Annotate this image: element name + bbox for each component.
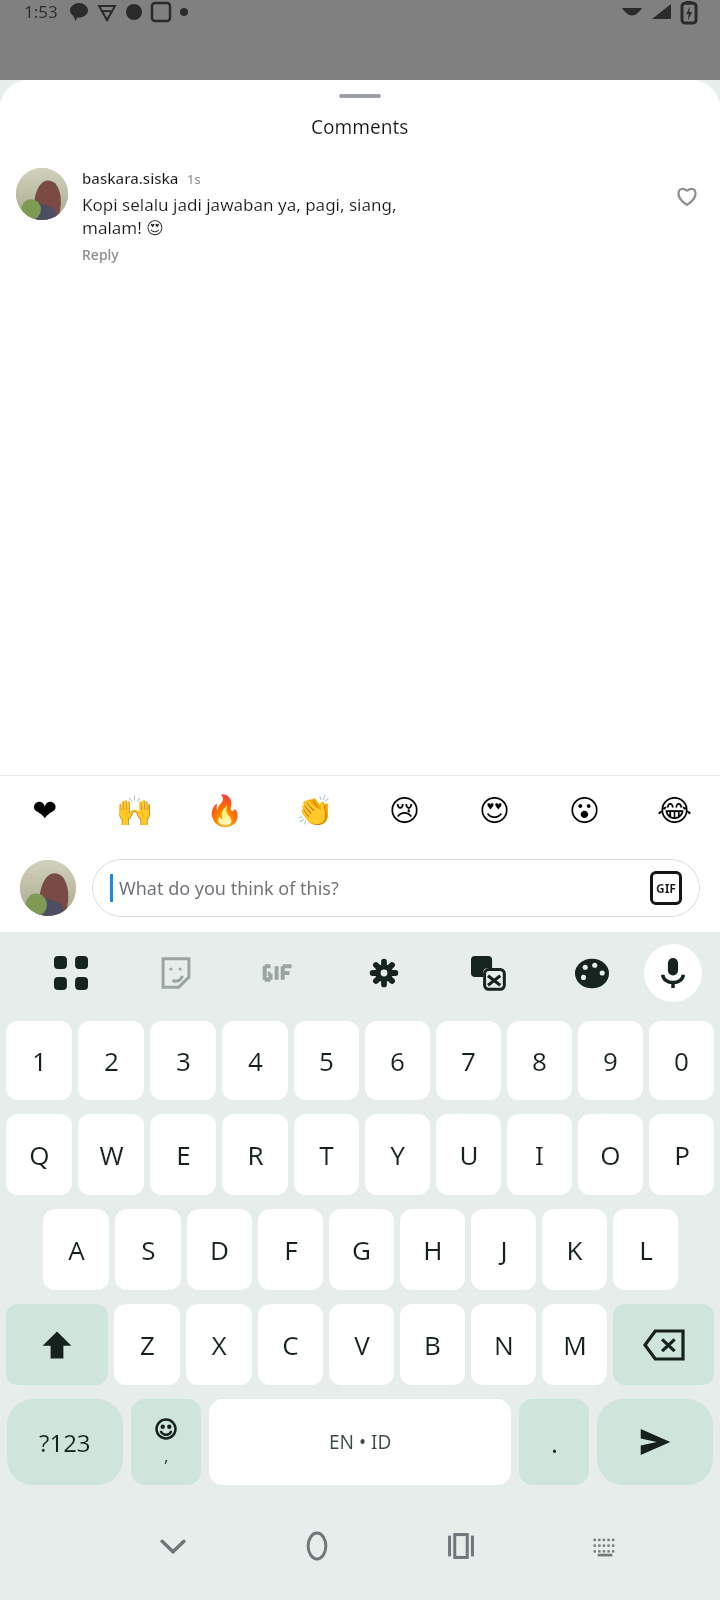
button[interactable]: Switch keyboard <box>533 1492 677 1600</box>
staticText: 🔥 <box>206 793 244 828</box>
button[interactable]: M <box>542 1304 607 1385</box>
button[interactable]: U <box>436 1114 501 1195</box>
staticText: Comments <box>311 114 409 140</box>
button[interactable]: 😍 <box>450 776 540 844</box>
button[interactable]: O <box>578 1114 643 1195</box>
staticText: 😍 <box>479 793 511 828</box>
staticText: J <box>500 1232 508 1267</box>
staticText: R <box>247 1137 264 1172</box>
button[interactable]: GIF <box>650 871 682 905</box>
staticText: O <box>600 1137 621 1172</box>
button[interactable]: ?123 <box>7 1399 123 1485</box>
staticText: M <box>563 1327 587 1362</box>
staticText: B <box>424 1327 441 1362</box>
button[interactable]: Send <box>597 1399 713 1485</box>
staticText: K <box>566 1232 583 1267</box>
button[interactable]: baskara.siska <box>0 164 720 264</box>
button[interactable]: T <box>294 1114 359 1195</box>
button[interactable]: 😂 <box>630 776 720 844</box>
staticText: 7 <box>461 1043 476 1078</box>
button[interactable]: 1 <box>6 1021 72 1100</box>
button[interactable]: F <box>258 1209 323 1290</box>
button[interactable]: Apps <box>18 932 123 1014</box>
staticText: D <box>210 1232 229 1267</box>
button[interactable]: X <box>186 1304 252 1385</box>
button[interactable]: Themes <box>540 932 644 1014</box>
staticText: X <box>211 1327 227 1362</box>
staticText: 1 <box>32 1043 47 1078</box>
button[interactable]: Recents <box>389 1492 533 1600</box>
button[interactable]: Settings <box>332 932 436 1014</box>
button[interactable]: . <box>519 1399 589 1485</box>
button[interactable]: 👏 <box>270 776 360 844</box>
staticText: 1s <box>187 170 201 188</box>
button[interactable]: Shift <box>6 1304 108 1385</box>
button[interactable]: Z <box>114 1304 180 1385</box>
staticText: Kopi selalu jadi jawaban ya, pagi, siang… <box>82 193 397 239</box>
button[interactable]: V <box>329 1304 394 1385</box>
button[interactable]: 6 <box>365 1021 430 1100</box>
button[interactable]: 0 <box>649 1021 714 1100</box>
button[interactable]: GIF search <box>228 932 332 1014</box>
button[interactable]: 😢 <box>360 776 450 844</box>
button[interactable]: 3 <box>150 1021 216 1100</box>
staticText: 🙌 <box>116 793 154 828</box>
staticText: 😮 <box>569 793 601 828</box>
staticText: 8 <box>532 1043 547 1078</box>
button[interactable]: Space <box>209 1399 511 1485</box>
button[interactable]: Reply <box>82 245 119 264</box>
button[interactable]: 8 <box>507 1021 572 1100</box>
button[interactable]: A <box>43 1209 109 1290</box>
button[interactable]: W <box>78 1114 144 1195</box>
button[interactable]: K <box>542 1209 607 1290</box>
button[interactable]: P <box>649 1114 714 1195</box>
button[interactable]: Home <box>245 1492 389 1600</box>
button[interactable]: 5 <box>294 1021 359 1100</box>
button[interactable]: 🙌 <box>90 776 180 844</box>
button[interactable]: R <box>222 1114 288 1195</box>
button[interactable]: I <box>507 1114 572 1195</box>
staticText: I <box>535 1137 544 1172</box>
button[interactable]: 2 <box>78 1021 144 1100</box>
button[interactable]: 9 <box>578 1021 643 1100</box>
button[interactable]: N <box>471 1304 536 1385</box>
button[interactable]: B <box>400 1304 465 1385</box>
button[interactable]: Like comment <box>670 178 704 212</box>
staticText: 5 <box>319 1043 334 1078</box>
staticText: GIF <box>656 880 676 896</box>
button[interactable]: 7 <box>436 1021 501 1100</box>
staticText: . <box>551 1425 558 1460</box>
staticText: G <box>352 1232 371 1267</box>
staticText: 0 <box>674 1043 689 1078</box>
staticText: , <box>164 1444 169 1467</box>
button[interactable]: G <box>329 1209 394 1290</box>
button[interactable]: C <box>258 1304 323 1385</box>
staticText: A <box>68 1232 85 1267</box>
staticText: 3 <box>176 1043 191 1078</box>
button[interactable]: H <box>400 1209 465 1290</box>
button[interactable]: ❤️ <box>0 776 90 844</box>
button[interactable]: Voice input <box>644 944 702 1002</box>
button[interactable]: Stickers <box>123 932 228 1014</box>
button[interactable]: Hide keyboard <box>101 1492 245 1600</box>
staticText: EN • ID <box>329 1429 392 1455</box>
button[interactable]: E <box>150 1114 216 1195</box>
button[interactable]: Backspace <box>613 1304 714 1385</box>
button[interactable]: J <box>471 1209 536 1290</box>
button[interactable]: 😮 <box>540 776 630 844</box>
button[interactable]: Emoji <box>131 1399 201 1485</box>
staticText: Q <box>29 1137 50 1172</box>
staticText: S <box>141 1232 156 1267</box>
staticText: 4 <box>248 1043 263 1078</box>
button[interactable]: S <box>115 1209 181 1290</box>
button[interactable]: 4 <box>222 1021 288 1100</box>
staticText: C <box>282 1327 299 1362</box>
button[interactable]: D <box>187 1209 252 1290</box>
staticText: 😂 <box>657 793 693 828</box>
button[interactable]: Translate <box>436 932 540 1014</box>
button[interactable]: Y <box>365 1114 430 1195</box>
button[interactable]: What do you think of this? <box>92 859 700 917</box>
button[interactable]: L <box>613 1209 678 1290</box>
button[interactable]: 🔥 <box>180 776 270 844</box>
button[interactable]: Q <box>6 1114 72 1195</box>
